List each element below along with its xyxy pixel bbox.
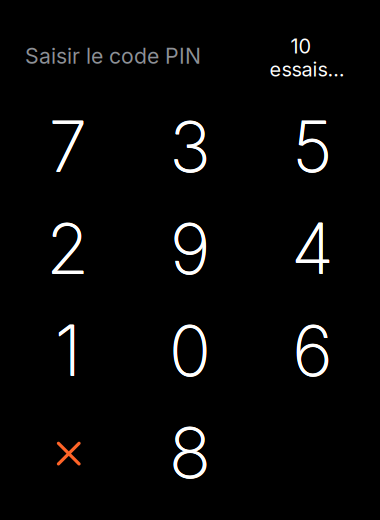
staticText: 1 (55, 309, 81, 393)
button[interactable]: Delete (7, 402, 129, 504)
button[interactable]: 7 (7, 96, 129, 198)
staticText: 8 (169, 411, 211, 495)
staticText: 0 (169, 309, 211, 393)
staticText: essais… (269, 57, 344, 81)
button[interactable]: 2 (7, 198, 129, 300)
staticText: 4 (291, 207, 333, 291)
staticText: 9 (170, 207, 210, 291)
button[interactable]: 8 (129, 402, 251, 504)
staticText: 10 (290, 34, 311, 58)
button[interactable]: 9 (129, 198, 251, 300)
staticText: 6 (292, 309, 332, 393)
button[interactable]: 3 (129, 96, 251, 198)
staticText: 2 (46, 207, 89, 291)
staticText: 5 (292, 105, 332, 189)
button[interactable]: 5 (251, 96, 373, 198)
button[interactable]: 4 (251, 198, 373, 300)
button[interactable]: 6 (251, 300, 373, 402)
button[interactable]: 1 (7, 300, 129, 402)
staticText: 3 (169, 105, 210, 189)
staticText: 7 (49, 105, 87, 189)
button[interactable]: 0 (129, 300, 251, 402)
staticText: Saisir le code PIN (25, 43, 201, 69)
